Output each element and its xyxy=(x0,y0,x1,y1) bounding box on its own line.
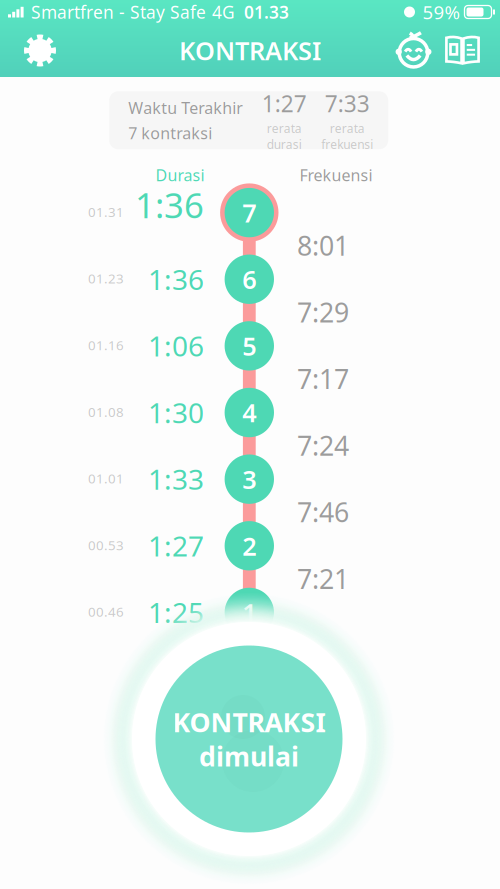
staticText: 1:27 xyxy=(148,527,204,564)
button[interactable]: Guide xyxy=(438,24,487,76)
staticText: 3 xyxy=(242,462,256,496)
staticText: KONTRAKSI xyxy=(172,704,325,739)
staticText: 1:36 xyxy=(135,182,204,228)
staticText: 1 xyxy=(242,596,256,629)
staticText: 1:27 xyxy=(262,88,307,118)
staticText: 01.31 xyxy=(88,203,124,221)
staticText: Durasi xyxy=(155,164,204,186)
staticText: 7:17 xyxy=(297,361,349,396)
staticText: 7 kontraksi xyxy=(128,122,212,143)
staticText: 5 xyxy=(242,329,256,363)
staticText: 7:46 xyxy=(297,494,349,530)
staticText: 59% xyxy=(422,0,460,24)
staticText: 7:21 xyxy=(297,561,349,596)
staticText: 01.23 xyxy=(88,270,124,287)
staticText: 01.08 xyxy=(88,403,124,421)
button[interactable]: Baby xyxy=(389,24,438,76)
staticText: Smartfren - Stay Safe xyxy=(31,0,206,23)
staticText: 1:33 xyxy=(148,460,204,498)
button[interactable]: KONTRAKSI xyxy=(99,589,399,889)
staticText: 01.33 xyxy=(244,0,289,23)
staticText: 1:25 xyxy=(148,594,204,631)
staticText: 1:30 xyxy=(148,394,204,431)
staticText: 01.01 xyxy=(88,469,124,487)
staticText: 7:33 xyxy=(325,88,370,118)
staticText: 01.16 xyxy=(88,336,124,354)
staticText: 00.46 xyxy=(88,603,124,620)
staticText: dimulai xyxy=(199,738,299,774)
staticText: 4G xyxy=(212,0,235,23)
staticText: 7:24 xyxy=(297,428,349,463)
staticText: 1:36 xyxy=(148,260,204,298)
staticText: KONTRAKSI xyxy=(179,34,321,67)
button[interactable]: Settings xyxy=(14,24,66,76)
staticText: 4 xyxy=(242,396,256,429)
staticText: Frekuensi xyxy=(299,164,372,186)
staticText: 6 xyxy=(242,262,256,296)
staticText: Waktu Terakhir xyxy=(128,97,243,118)
staticText: 2 xyxy=(242,529,256,563)
staticText: durasi xyxy=(267,136,302,152)
staticText: 7:29 xyxy=(297,294,349,330)
staticText: 8:01 xyxy=(297,228,349,263)
staticText: 1:06 xyxy=(148,327,204,364)
staticText: 7 xyxy=(242,196,256,229)
staticText: 00.53 xyxy=(88,536,124,554)
staticText: rerata xyxy=(267,120,302,136)
staticText: frekuensi xyxy=(321,136,373,152)
staticText: rerata xyxy=(330,120,365,136)
